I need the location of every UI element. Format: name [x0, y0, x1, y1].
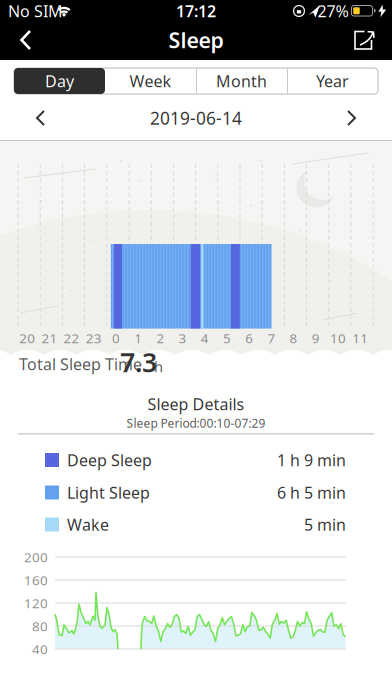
staticText: Light Sleep: [67, 482, 150, 503]
button[interactable]: Month: [196, 68, 286, 94]
staticText: 8: [290, 329, 298, 347]
staticText: 2: [156, 329, 164, 347]
staticText: Month: [216, 70, 267, 92]
staticText: 10: [330, 329, 346, 347]
staticText: 11: [352, 329, 368, 347]
staticText: Sleep Period:00:10-07:29: [126, 415, 265, 431]
staticText: 3: [179, 329, 187, 347]
staticText: 20: [19, 329, 35, 347]
staticText: Sleep: [168, 26, 223, 54]
staticText: 5: [223, 329, 231, 347]
staticText: 1: [134, 329, 142, 347]
staticText: 7.3: [120, 344, 157, 380]
staticText: Total Sleep Time: [19, 353, 142, 375]
button[interactable]: Previous day: [36, 110, 46, 126]
staticText: 9: [312, 329, 320, 347]
staticText: 27%: [317, 0, 348, 22]
staticText: Year: [316, 70, 349, 92]
button[interactable]: Share: [353, 28, 379, 52]
staticText: h: [154, 357, 163, 376]
staticText: Week: [129, 70, 171, 92]
staticText: 160: [24, 571, 48, 589]
staticText: No SIM: [8, 0, 63, 22]
staticText: 2019-06-14: [150, 106, 242, 129]
staticText: Sleep Details: [147, 393, 244, 415]
staticText: 120: [24, 594, 48, 612]
staticText: 0: [112, 329, 120, 347]
button[interactable]: Week: [105, 68, 195, 94]
staticText: 5 min: [304, 514, 346, 535]
staticText: 21: [41, 329, 57, 347]
staticText: Day: [45, 70, 74, 92]
staticText: 7: [267, 329, 275, 347]
staticText: 200: [24, 548, 48, 566]
staticText: 22: [64, 329, 80, 347]
staticText: Deep Sleep: [67, 449, 152, 471]
staticText: 6: [245, 329, 253, 347]
staticText: 4: [201, 329, 209, 347]
staticText: Wake: [67, 514, 109, 535]
staticText: 6 h 5 min: [277, 482, 346, 503]
button[interactable]: Back: [20, 30, 32, 50]
button[interactable]: Day: [14, 68, 105, 94]
staticText: 1 h 9 min: [277, 449, 346, 471]
staticText: 40: [32, 640, 48, 658]
staticText: 80: [32, 617, 48, 635]
staticText: 23: [86, 329, 102, 347]
staticText: 17:12: [176, 0, 216, 22]
button[interactable]: Year: [287, 68, 377, 94]
button[interactable]: Next day: [346, 110, 356, 126]
